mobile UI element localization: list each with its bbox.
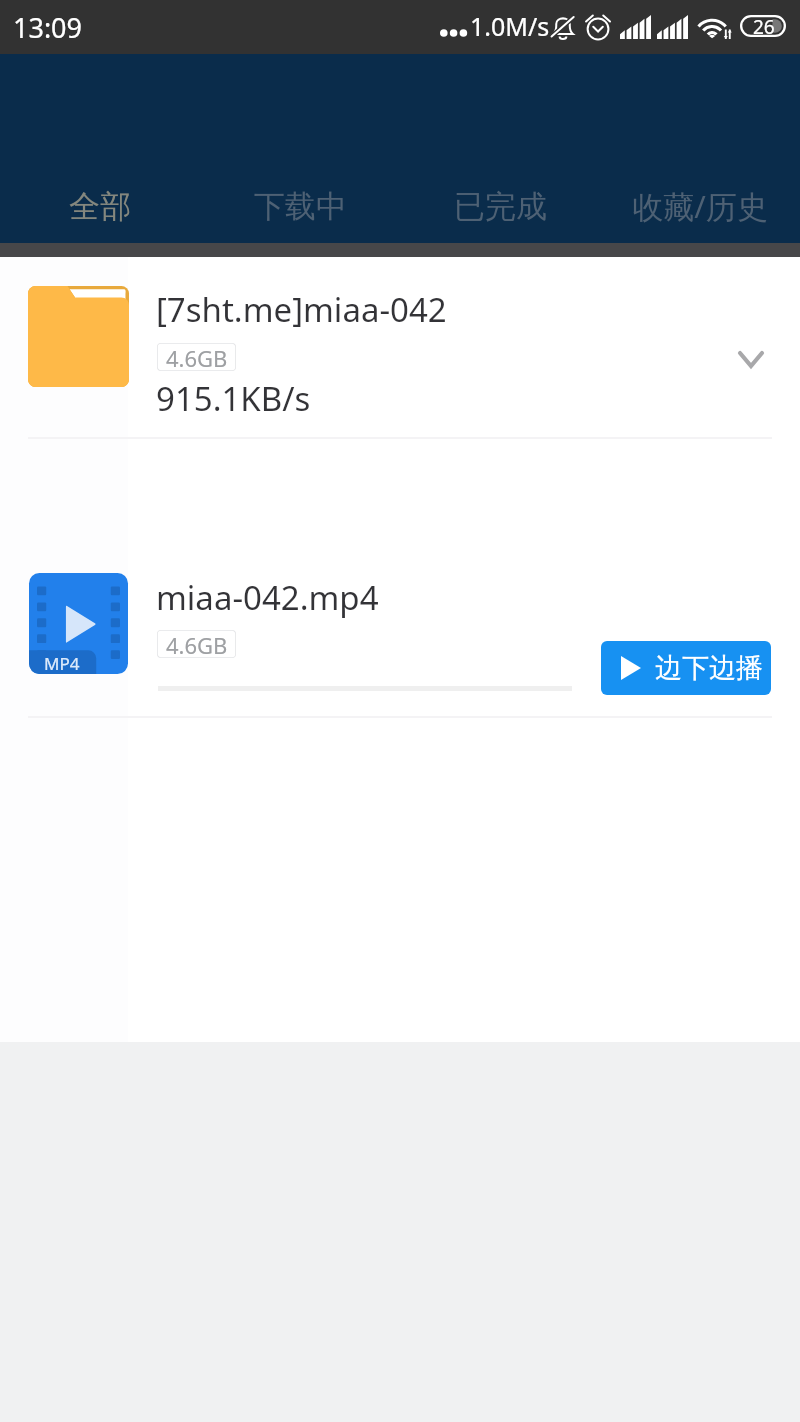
staticText: 4.6GB <box>166 630 228 658</box>
button[interactable]: 已完成 <box>400 176 600 236</box>
button[interactable]: MP4 <box>0 555 800 715</box>
staticText: 已完成 <box>454 187 547 226</box>
button[interactable]: 边下边播 <box>601 641 771 695</box>
staticText: 全部 <box>69 187 131 226</box>
button[interactable]: Expand <box>721 329 781 389</box>
staticText: 边下边播 <box>655 651 763 685</box>
staticText: 1.0M/s <box>470 9 550 43</box>
staticText: 13:09 <box>13 9 83 46</box>
staticText: 收藏/历史 <box>632 185 768 227</box>
staticText: miaa-042.mp4 <box>156 575 379 620</box>
staticText: 4.6GB <box>166 343 228 371</box>
staticText: 下载中 <box>254 187 347 226</box>
staticText: 915.1KB/s <box>156 376 311 421</box>
button[interactable]: 收藏/历史 <box>600 176 800 236</box>
staticText: [7sht.me]miaa-042 <box>156 287 447 332</box>
button[interactable]: 全部 <box>0 176 200 236</box>
button[interactable]: [7sht.me]miaa-042 <box>0 257 800 437</box>
staticText: MP4 <box>44 652 80 675</box>
staticText: 26 <box>753 14 775 36</box>
button[interactable]: 下载中 <box>200 176 400 236</box>
